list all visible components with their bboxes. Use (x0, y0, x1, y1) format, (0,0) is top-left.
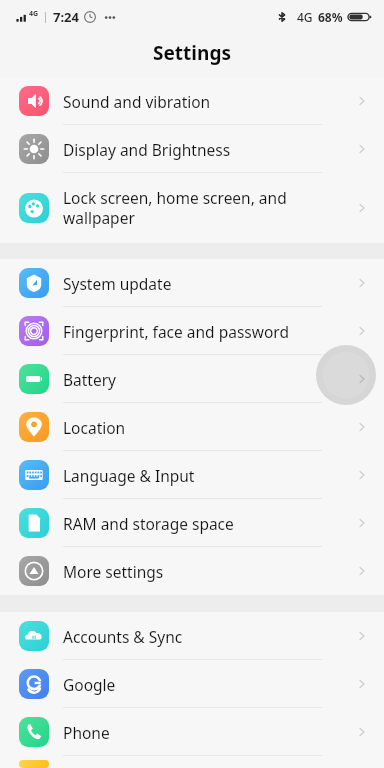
staticText: Phone (63, 722, 354, 743)
staticText: 4G (297, 9, 313, 25)
button[interactable]: System update (0, 259, 384, 307)
button[interactable]: Sound and vibration (0, 77, 384, 125)
staticText: Accounts & Sync (63, 626, 354, 647)
button[interactable]: Accounts & Sync (0, 612, 384, 660)
staticText: 4G (29, 9, 39, 19)
button[interactable]: RAM and storage space (0, 499, 384, 547)
staticText: More settings (63, 561, 354, 582)
staticText: Fingerprint, face and password (63, 321, 354, 342)
other: Battery touch feedback (316, 345, 376, 405)
staticText: 7:24 (53, 8, 79, 26)
staticText: RAM and storage space (63, 513, 354, 534)
staticText: Sound and vibration (63, 91, 354, 112)
staticText: Location (63, 417, 354, 438)
staticText: 68% (318, 9, 343, 25)
staticText: Lock screen, home screen, and wallpaper (63, 187, 354, 229)
button[interactable]: Fingerprint, face and password (0, 307, 384, 355)
staticText: Display and Brightness (63, 139, 354, 160)
staticText: Google (63, 674, 354, 695)
button[interactable]: Language & Input (0, 451, 384, 499)
staticText: Settings (153, 40, 231, 66)
button[interactable]: Phone (0, 708, 384, 756)
staticText: Battery (63, 369, 354, 390)
button[interactable]: Display and Brightness (0, 125, 384, 173)
button[interactable]: Google (0, 660, 384, 708)
button[interactable]: Battery (0, 355, 384, 403)
staticText: Language & Input (63, 465, 354, 486)
button[interactable]: Lock screen, home screen, and wallpaper (0, 173, 384, 243)
button[interactable]: More settings (0, 547, 384, 595)
button[interactable]: Location (0, 403, 384, 451)
staticText: System update (63, 273, 354, 294)
